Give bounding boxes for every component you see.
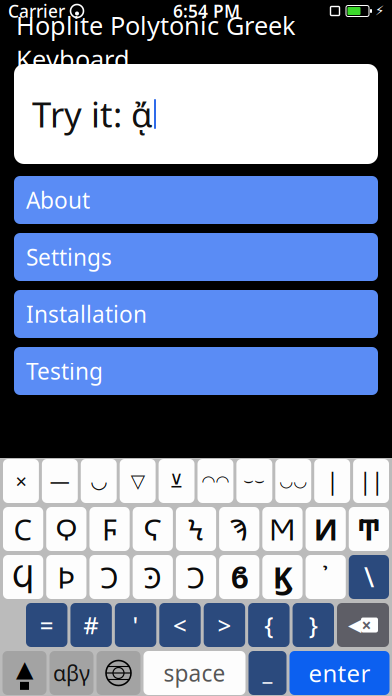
staticText: ⌣⌣ [243, 473, 265, 489]
button[interactable]: < [159, 603, 201, 647]
button[interactable]: # [70, 603, 112, 647]
button[interactable]: || [353, 459, 389, 503]
staticText: < [173, 609, 187, 641]
staticText: Ϻ [269, 509, 296, 548]
button[interactable]: ' [115, 603, 156, 647]
staticText: Carrier [8, 0, 65, 22]
button[interactable]: | [314, 459, 350, 503]
staticText: ◀ [348, 615, 361, 635]
button[interactable]: Ϸ [46, 555, 86, 599]
staticText: Ϡ [231, 509, 248, 548]
button[interactable]: _ [248, 651, 286, 695]
button[interactable]: Ϻ [262, 507, 302, 551]
staticText: Try it: ᾄ [32, 91, 153, 137]
staticText: _ [262, 655, 272, 686]
staticText: Ͷ [314, 509, 338, 548]
button[interactable]: Ͽ [133, 555, 173, 599]
staticText: Ͻ [100, 557, 119, 596]
staticText: ϐ [230, 557, 249, 596]
staticText: || [359, 466, 383, 496]
button[interactable]: enter [289, 651, 389, 695]
staticText: Installation [26, 299, 147, 329]
staticText: About [26, 185, 90, 215]
button[interactable]: ⌣⌣ [236, 459, 272, 503]
button[interactable]: ᾿ [306, 555, 346, 599]
button[interactable]: Ϥ [3, 555, 43, 599]
button[interactable]: Settings [14, 233, 378, 281]
button[interactable]: Ϗ [262, 555, 302, 599]
staticText: Ɔ [186, 557, 205, 596]
button[interactable]: Next keyboard [96, 651, 140, 695]
staticText: } [309, 609, 318, 641]
button[interactable]: ◡◡ [275, 459, 311, 503]
staticText: | [326, 466, 338, 496]
staticText: Ϥ [12, 560, 34, 594]
staticText: ᾿ [322, 559, 329, 595]
staticText: Settings [26, 242, 112, 272]
staticText: > [217, 609, 231, 641]
staticText: space [163, 658, 225, 688]
button[interactable]: Ϡ [219, 507, 259, 551]
button[interactable]: Ϙ [46, 507, 86, 551]
button[interactable]: Ͷ [306, 507, 346, 551]
staticText: — [50, 468, 70, 494]
button[interactable]: Ͳ [349, 507, 389, 551]
button[interactable]: Ͻ [89, 555, 130, 599]
button[interactable]: = [26, 603, 67, 647]
staticText: { [264, 609, 273, 641]
staticText: Ϸ [57, 557, 75, 596]
staticText: × [15, 468, 26, 494]
staticText: ◡ [90, 470, 107, 492]
button[interactable]: ▽ [120, 459, 156, 503]
staticText: αβγ [53, 659, 90, 687]
button[interactable]: > [204, 603, 245, 647]
staticText: # [83, 609, 99, 641]
button[interactable]: × [3, 459, 39, 503]
staticText: Ϗ [273, 557, 292, 596]
button[interactable]: Shift [2, 651, 46, 695]
staticText: × [361, 613, 371, 636]
staticText: C [14, 509, 33, 548]
staticText: \ [364, 559, 374, 595]
staticText: enter [308, 657, 370, 689]
button[interactable]: Ϝ [89, 507, 130, 551]
button[interactable]: ⊻ [159, 459, 194, 503]
button[interactable]: } [293, 603, 334, 647]
staticText: Hoplite Polytonic Greek Keyboard [16, 8, 296, 76]
staticText: Ϝ [102, 509, 117, 548]
staticText: Ͽ [143, 557, 162, 596]
button[interactable]: About [14, 176, 378, 224]
staticText: Ͳ [357, 509, 380, 548]
button[interactable]: space [143, 651, 245, 695]
staticText: ◡◡ [279, 472, 307, 490]
button[interactable]: ϐ [219, 555, 259, 599]
staticText: Ϟ [188, 509, 203, 548]
button[interactable]: \ [349, 555, 389, 599]
button[interactable]: Ϟ [176, 507, 216, 551]
button[interactable]: Ϛ [133, 507, 173, 551]
staticText: ⚡︎ [375, 3, 384, 18]
button[interactable]: { [248, 603, 289, 647]
staticText: Ϙ [55, 509, 77, 548]
button[interactable]: Installation [14, 290, 378, 338]
button[interactable]: C [3, 507, 43, 551]
staticText: ▲ [16, 656, 33, 682]
staticText: ' [133, 609, 139, 641]
button[interactable]: ◡ [81, 459, 117, 503]
staticText: Ϛ [143, 509, 162, 548]
staticText: = [40, 609, 54, 641]
button[interactable]: ◠◠ [197, 459, 233, 503]
staticText: Testing [26, 356, 103, 386]
button[interactable]: — [42, 459, 78, 503]
button[interactable]: Testing [14, 347, 378, 395]
staticText: ◠◠ [201, 472, 229, 490]
button[interactable]: Delete [337, 603, 389, 647]
button[interactable]: αβγ [49, 651, 93, 695]
staticText: ▽ [131, 470, 145, 492]
staticText: 6:54 PM [173, 0, 240, 22]
staticText: ⊻ [170, 470, 184, 492]
button[interactable]: Ɔ [176, 555, 216, 599]
